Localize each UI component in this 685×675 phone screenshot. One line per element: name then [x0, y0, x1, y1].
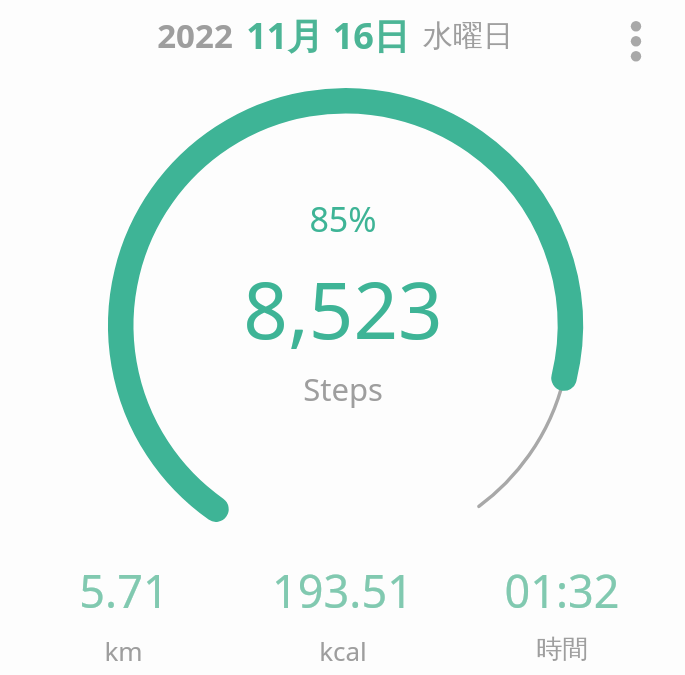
staticText: 8,523: [243, 256, 443, 362]
staticText: km: [104, 633, 143, 668]
button[interactable]: 85%: [0, 196, 685, 410]
staticText: 01:32: [504, 560, 620, 621]
staticText: kcal: [319, 633, 367, 668]
button[interactable]: More options: [615, 14, 657, 72]
button[interactable]: 01:32: [452, 558, 671, 668]
staticText: 11月 16日: [246, 11, 410, 60]
staticText: 5.71: [79, 560, 169, 621]
staticText: 193.51: [272, 560, 413, 621]
button[interactable]: 193.51: [233, 558, 452, 670]
button[interactable]: 2022: [157, 11, 513, 60]
staticText: 2022: [157, 13, 233, 58]
button[interactable]: 5.71: [14, 558, 233, 670]
staticText: 85%: [309, 196, 377, 242]
staticText: Steps: [303, 368, 383, 410]
staticText: 時間: [536, 633, 588, 666]
staticText: 水曜日: [423, 17, 513, 55]
